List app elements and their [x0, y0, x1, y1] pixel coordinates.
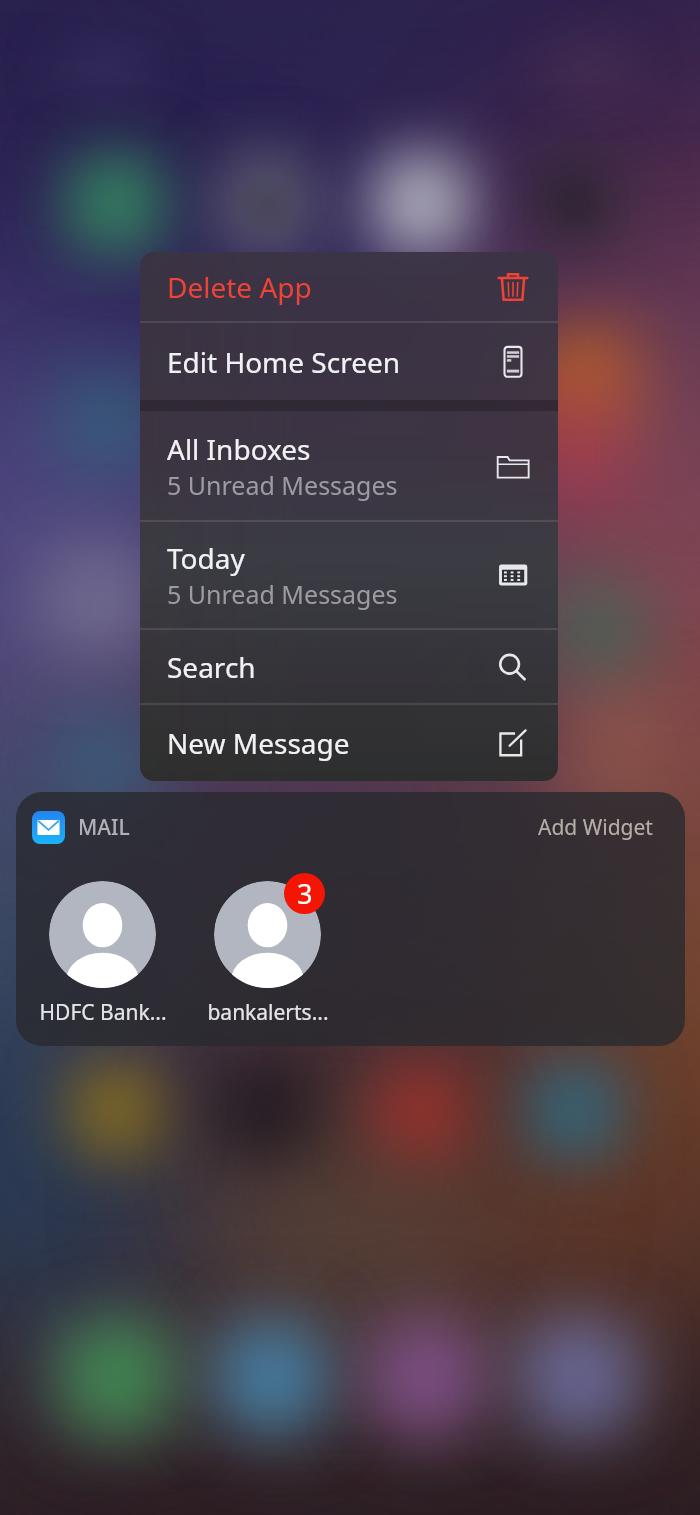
staticText: New Message: [167, 724, 350, 762]
staticText: MAIL: [78, 813, 130, 842]
button[interactable]: Today: [140, 522, 558, 628]
button[interactable]: 3: [193, 865, 343, 1025]
staticText: All Inboxes: [167, 430, 311, 468]
button[interactable]: Delete App: [140, 252, 558, 321]
button[interactable]: Search: [140, 630, 558, 703]
staticText: 5 Unread Messages: [167, 468, 398, 502]
staticText: bankalerts...: [207, 998, 329, 1027]
button[interactable]: Add Widget: [538, 813, 653, 842]
button[interactable]: Edit Home Screen: [140, 323, 558, 400]
staticText: Search: [167, 648, 256, 686]
button[interactable]: HDFC Bank...: [28, 865, 178, 1025]
button[interactable]: All Inboxes: [140, 411, 558, 520]
staticText: 3: [297, 875, 313, 912]
staticText: 5 Unread Messages: [167, 577, 398, 611]
staticText: Edit Home Screen: [167, 343, 401, 381]
staticText: HDFC Bank...: [39, 998, 167, 1027]
staticText: Today: [167, 539, 245, 577]
button[interactable]: New Message: [140, 705, 558, 780]
staticText: Delete App: [167, 268, 312, 306]
